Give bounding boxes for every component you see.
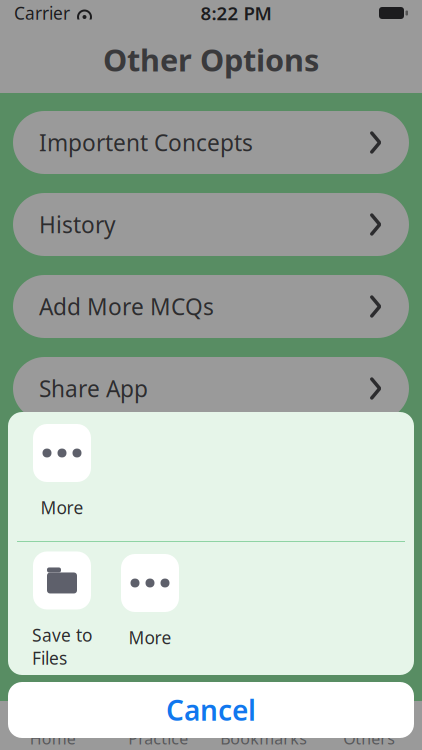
- button[interactable]: Cancel: [8, 682, 414, 738]
- button[interactable]: Share App: [13, 357, 409, 420]
- button[interactable]: Practice: [105, 701, 211, 750]
- button[interactable]: Home: [0, 701, 105, 750]
- staticText: Share App: [39, 373, 148, 403]
- staticText: Cancel: [166, 691, 256, 729]
- staticText: Importent Concepts: [39, 127, 253, 157]
- staticText: Save to Files: [32, 623, 92, 669]
- button[interactable]: More: [20, 412, 104, 541]
- button[interactable]: More: [108, 542, 192, 675]
- staticText: More: [128, 626, 171, 649]
- button[interactable]: Importent Concepts: [13, 111, 409, 174]
- staticText: Bookmarks: [220, 728, 307, 749]
- button[interactable]: Save to Files: [20, 539, 104, 677]
- staticText: 8:22 PM: [200, 1, 271, 25]
- staticText: Carrier: [14, 1, 70, 24]
- staticText: More: [40, 496, 83, 519]
- button[interactable]: History: [13, 193, 409, 256]
- button[interactable]: Others: [316, 701, 422, 750]
- button[interactable]: Bookmarks: [211, 701, 316, 750]
- staticText: History: [39, 209, 116, 239]
- staticText: Practice: [128, 728, 188, 749]
- staticText: Add More MCQs: [39, 291, 214, 321]
- staticText: Others: [343, 728, 395, 749]
- staticText: Other Options: [103, 39, 319, 80]
- staticText: Home: [30, 728, 76, 749]
- button[interactable]: Add More MCQs: [13, 275, 409, 338]
